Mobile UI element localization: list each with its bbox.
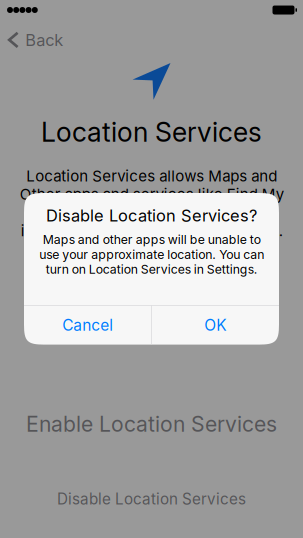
staticText: Disable Location Services <box>57 490 246 508</box>
button[interactable]: Enable Location Services <box>0 404 303 444</box>
button[interactable]: Cancel <box>24 306 151 345</box>
staticText: Location Services <box>41 116 262 148</box>
button[interactable]: Disable Location Services <box>0 485 303 513</box>
staticText: Cancel <box>62 316 113 334</box>
staticText: OK <box>204 316 226 334</box>
staticText: Back <box>25 30 63 50</box>
staticText: Maps and other apps will be unable to us… <box>39 232 264 277</box>
staticText: Enable Location Services <box>26 411 277 437</box>
staticText: Disable Location Services? <box>46 206 257 225</box>
staticText: Location Services allows Maps and Other … <box>19 167 283 240</box>
button[interactable]: OK <box>152 306 279 345</box>
button[interactable]: Back <box>0 24 73 56</box>
